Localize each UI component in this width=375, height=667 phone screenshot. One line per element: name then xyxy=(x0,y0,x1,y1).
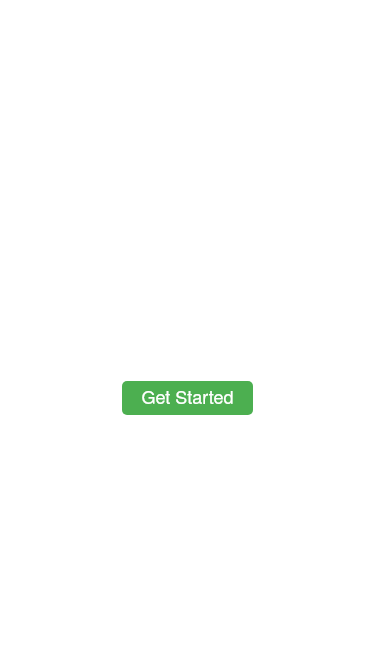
staticText: Get Started xyxy=(141,383,234,409)
button[interactable]: Get Started xyxy=(122,381,253,415)
